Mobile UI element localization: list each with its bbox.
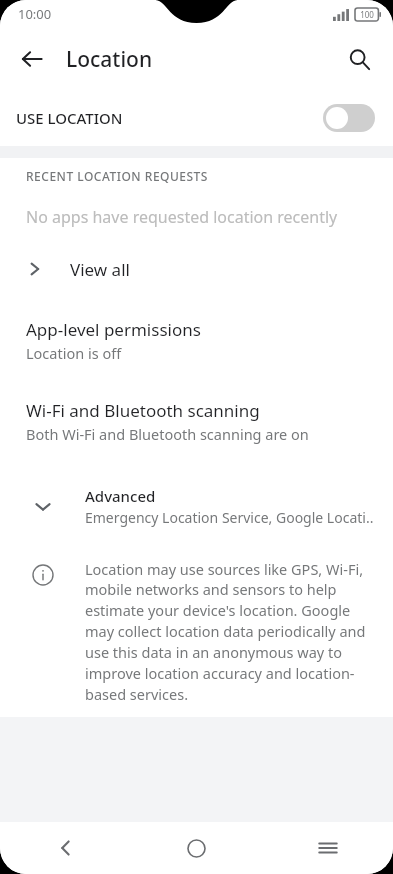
button[interactable]: USE LOCATION	[0, 90, 393, 146]
staticText: No apps have requested location recently	[26, 206, 338, 228]
staticText: Location is off	[26, 343, 122, 363]
staticText: Location may use sources like GPS, Wi-Fi…	[85, 559, 369, 705]
staticText: Emergency Location Service, Google Locat…	[85, 508, 374, 527]
staticText: USE LOCATION	[16, 108, 123, 128]
button[interactable]: App-level permissions	[0, 314, 393, 367]
staticText: App-level permissions	[26, 318, 201, 341]
button[interactable]: Search	[335, 35, 383, 83]
button[interactable]: Use location toggle	[323, 104, 375, 132]
button[interactable]: Home	[131, 822, 262, 874]
button[interactable]: View all	[0, 240, 393, 298]
button[interactable]: Advanced	[0, 478, 393, 535]
staticText: Both Wi-Fi and Bluetooth scanning are on	[26, 424, 309, 444]
staticText: Location	[66, 45, 153, 74]
staticText: 100	[360, 9, 374, 20]
staticText: RECENT LOCATION REQUESTS	[26, 168, 208, 184]
staticText: Advanced	[85, 486, 156, 506]
button[interactable]: Back	[0, 822, 131, 874]
button[interactable]: Recent apps	[262, 822, 393, 874]
button[interactable]: Wi-Fi and Bluetooth scanning	[0, 395, 393, 448]
staticText: Wi-Fi and Bluetooth scanning	[26, 399, 260, 422]
staticText: View all	[70, 258, 130, 281]
staticText: 10:00	[18, 5, 52, 23]
button[interactable]: Back	[8, 35, 56, 83]
